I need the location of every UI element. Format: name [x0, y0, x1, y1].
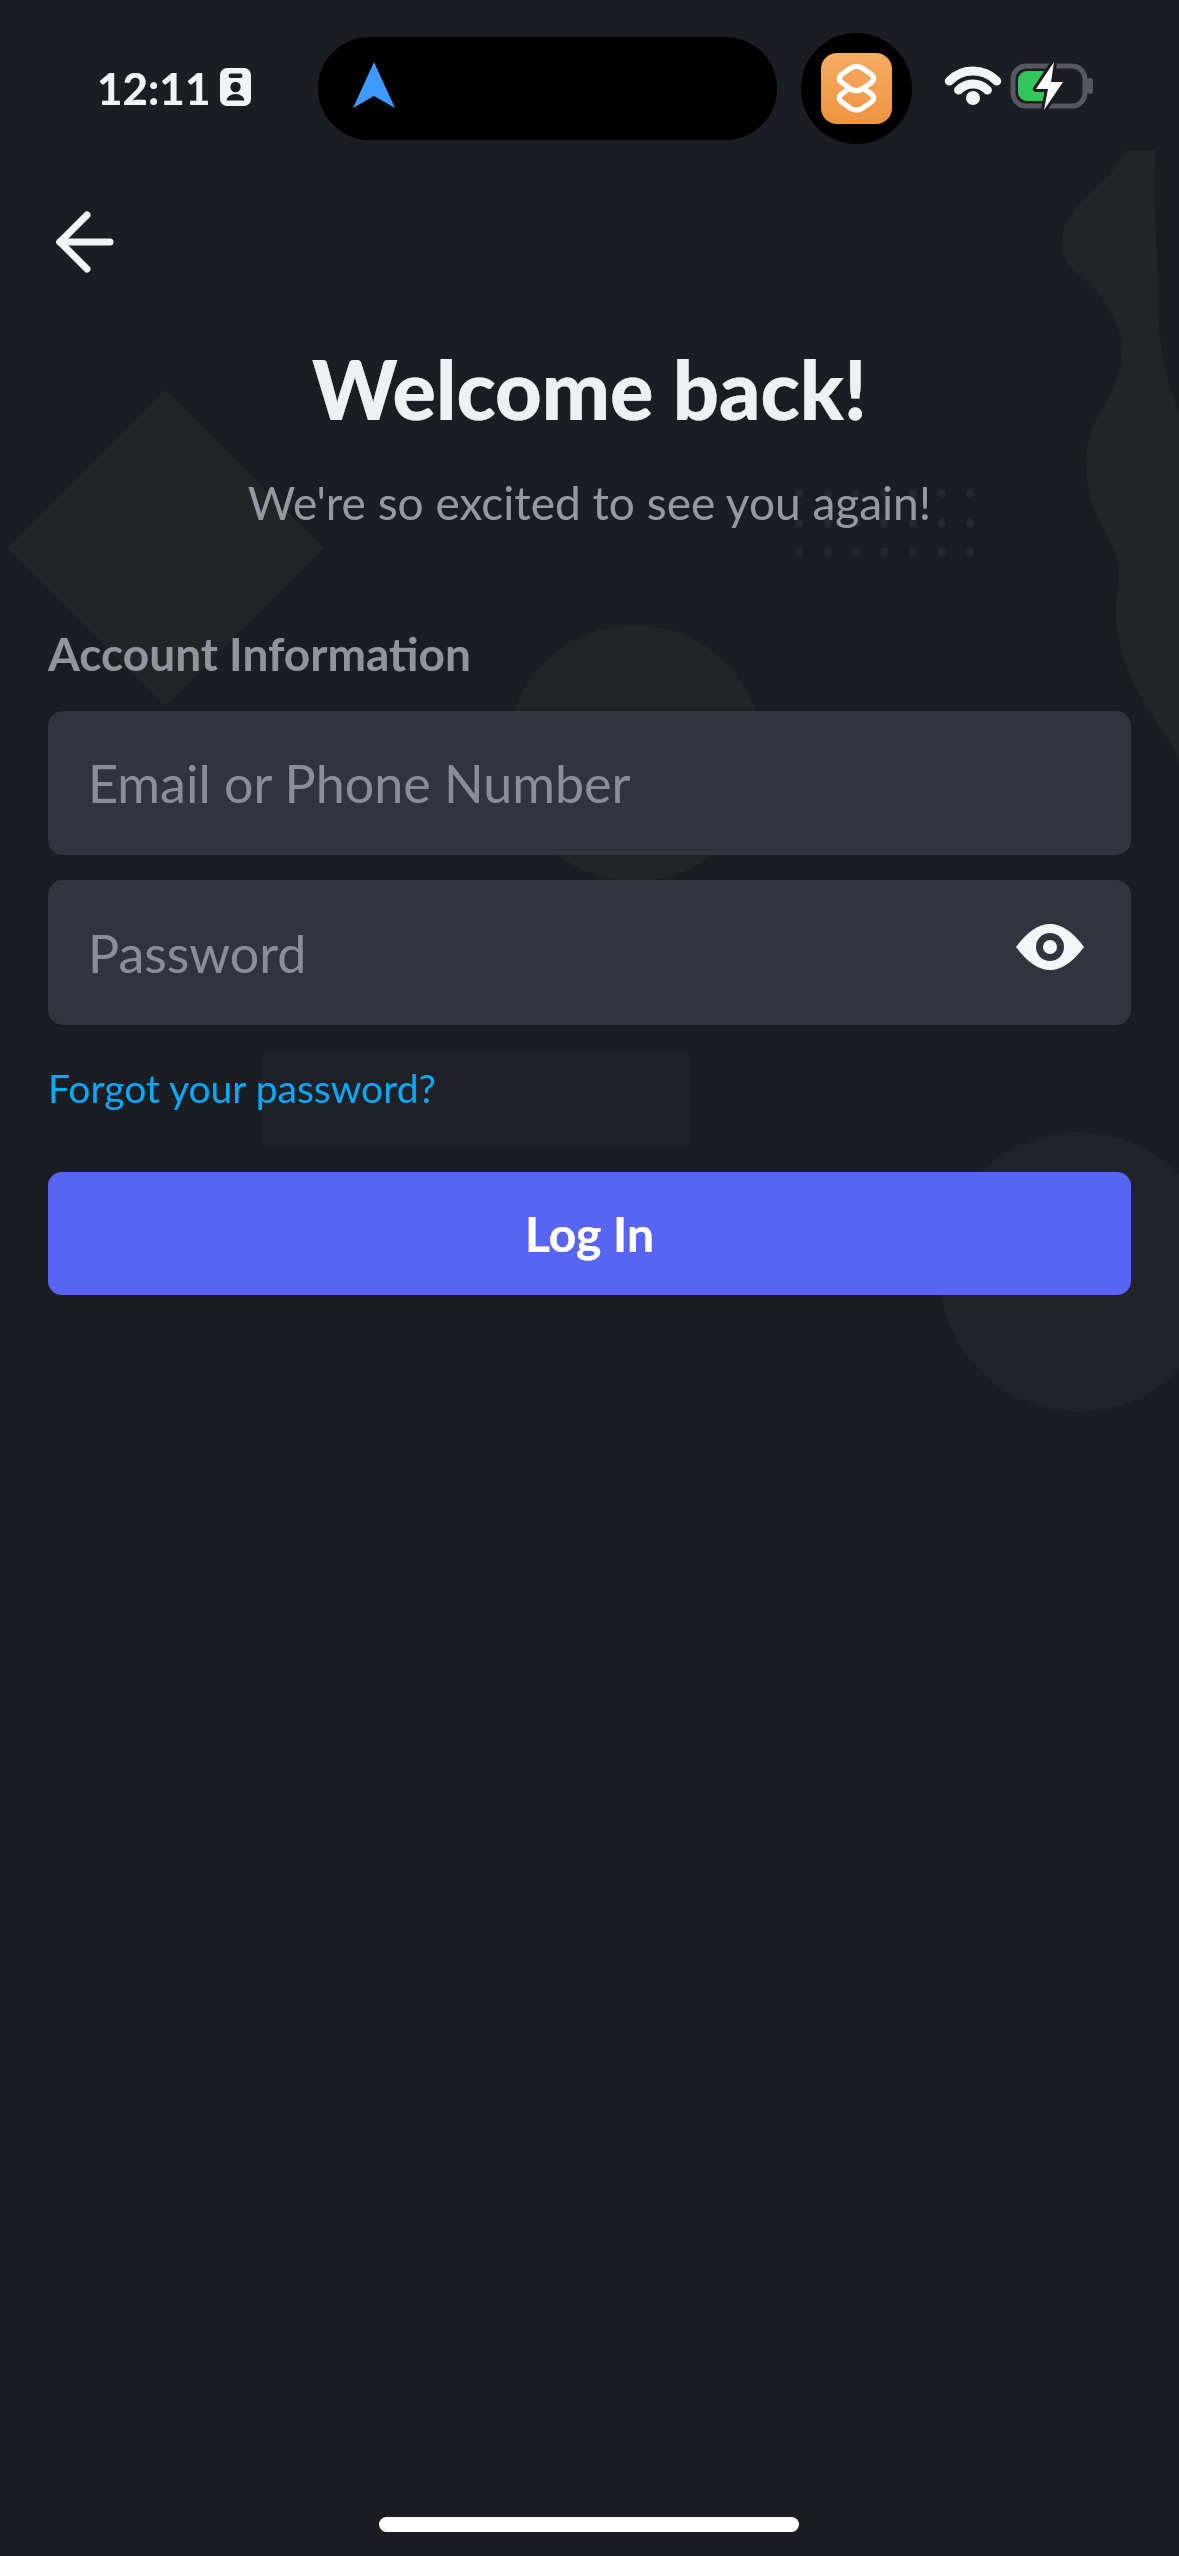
staticText: Log In [525, 1205, 655, 1263]
staticText: Account Information [48, 626, 471, 681]
staticText: Password [88, 922, 307, 984]
staticText: We're so excited to see you again! [0, 475, 1179, 530]
button[interactable] [40, 198, 128, 286]
staticText: 12:11 [97, 62, 211, 115]
button[interactable]: Forgot your password? [48, 1065, 436, 1112]
button[interactable]: Log In [48, 1172, 1131, 1295]
staticText: Forgot your password? [48, 1065, 436, 1112]
button[interactable]: Email or Phone Number [48, 711, 1131, 855]
button[interactable]: Password [48, 880, 1131, 1025]
staticText: Email or Phone Number [88, 752, 631, 814]
staticText: Welcome back! [0, 340, 1179, 437]
